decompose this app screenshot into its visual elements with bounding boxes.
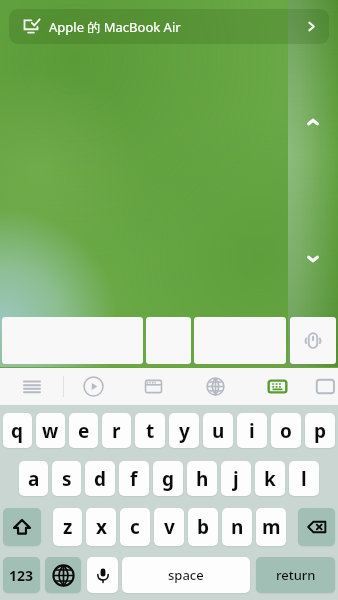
staticText: p: [314, 418, 327, 444]
button[interactable]: u: [203, 413, 233, 448]
staticText: n: [231, 514, 244, 540]
button[interactable]: Text field: [2, 317, 143, 364]
staticText: e: [78, 418, 90, 444]
button[interactable]: v: [154, 508, 184, 546]
button[interactable]: space: [122, 557, 250, 593]
button[interactable]: x: [86, 508, 116, 546]
button[interactable]: Scroll up: [308, 113, 318, 131]
staticText: v: [164, 514, 175, 540]
staticText: f: [130, 466, 138, 492]
button[interactable]: r: [102, 413, 131, 448]
button[interactable]: Shift: [3, 508, 41, 546]
button[interactable]: n: [222, 508, 252, 546]
button[interactable]: Dictate: [87, 557, 118, 593]
button[interactable]: z: [53, 508, 82, 546]
button[interactable]: Text field: [194, 317, 286, 364]
staticText: h: [196, 466, 209, 492]
staticText: c: [130, 514, 140, 540]
button[interactable]: Globe: [184, 368, 246, 405]
staticText: t: [146, 418, 155, 444]
button[interactable]: i: [237, 413, 267, 448]
button[interactable]: p: [305, 413, 335, 448]
staticText: b: [197, 514, 210, 540]
staticText: g: [162, 466, 175, 492]
button[interactable]: k: [255, 461, 285, 496]
staticText: return: [276, 566, 316, 584]
staticText: Apple 的 MacBook Air: [49, 18, 181, 36]
button[interactable]: q: [3, 413, 32, 448]
button[interactable]: b: [188, 508, 218, 546]
button[interactable]: w: [36, 413, 65, 448]
button[interactable]: Apple 的 MacBook Air: [9, 9, 329, 44]
staticText: m: [262, 514, 281, 540]
button[interactable]: d: [85, 461, 115, 496]
staticText: k: [264, 466, 276, 492]
staticText: u: [212, 418, 225, 444]
button[interactable]: s: [52, 461, 81, 496]
staticText: o: [280, 418, 292, 444]
staticText: 123: [9, 566, 34, 585]
button[interactable]: Keyboard: [246, 368, 308, 405]
button[interactable]: t: [135, 413, 165, 448]
staticText: a: [28, 466, 40, 492]
button[interactable]: Backspace: [298, 508, 335, 546]
button[interactable]: l: [289, 461, 319, 496]
staticText: z: [63, 514, 73, 540]
staticText: j: [233, 466, 239, 492]
staticText: s: [62, 466, 72, 492]
staticText: i: [249, 418, 255, 444]
button[interactable]: Window: [122, 368, 184, 405]
button[interactable]: o: [271, 413, 301, 448]
button[interactable]: a: [19, 461, 48, 496]
button[interactable]: j: [221, 461, 251, 496]
button[interactable]: h: [187, 461, 217, 496]
button[interactable]: Text field: [146, 317, 191, 364]
button[interactable]: Haptic feedback: [290, 317, 336, 364]
button[interactable]: 123: [3, 557, 40, 593]
button[interactable]: Menu: [0, 368, 63, 405]
button[interactable]: c: [120, 508, 150, 546]
staticText: l: [301, 466, 307, 492]
button[interactable]: f: [119, 461, 149, 496]
button[interactable]: m: [256, 508, 286, 546]
staticText: x: [96, 514, 107, 540]
staticText: w: [42, 418, 59, 444]
button[interactable]: y: [169, 413, 199, 448]
button[interactable]: e: [69, 413, 98, 448]
button[interactable]: More: [308, 368, 338, 405]
button[interactable]: Scroll down: [308, 250, 318, 268]
staticText: y: [179, 418, 190, 444]
staticText: d: [94, 466, 107, 492]
staticText: space: [168, 566, 204, 584]
staticText: r: [112, 418, 121, 444]
button[interactable]: return: [256, 557, 335, 593]
button[interactable]: Switch keyboard: [45, 557, 81, 593]
button[interactable]: g: [153, 461, 183, 496]
staticText: q: [11, 418, 24, 444]
button[interactable]: Play: [64, 368, 122, 405]
